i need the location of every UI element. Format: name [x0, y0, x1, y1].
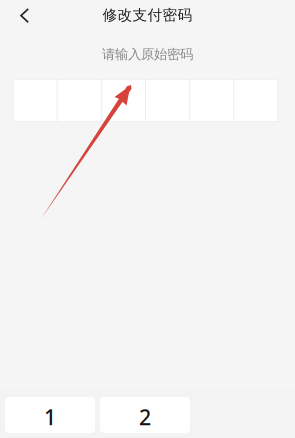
button[interactable]: 2 [100, 397, 190, 433]
button[interactable]: 1 [5, 397, 95, 433]
button[interactable]: Back [20, 2, 60, 30]
staticText: 请输入原始密码 [102, 46, 193, 62]
staticText: 2 [139, 403, 151, 431]
staticText: 1 [44, 403, 56, 431]
staticText: 修改支付密码 [102, 6, 192, 24]
